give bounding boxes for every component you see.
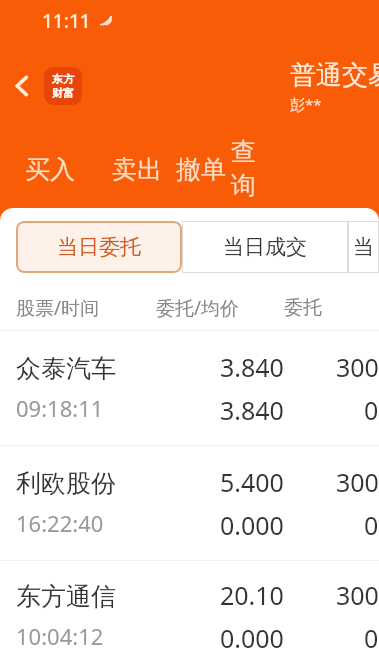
staticText: 东方通信 <box>16 581 116 612</box>
staticText: 查询 <box>228 136 259 202</box>
staticText: 当日委托 <box>57 234 141 260</box>
button[interactable]: 利欧股份 <box>0 446 379 560</box>
button[interactable]: 卖出 <box>100 130 174 208</box>
button[interactable]: 当日成交 <box>182 221 348 273</box>
staticText: 0 <box>364 393 379 427</box>
staticText: 买入 <box>25 154 75 185</box>
staticText: 09:18:11 <box>16 393 104 423</box>
staticText: 当日 <box>348 234 379 260</box>
staticText: 3.840 <box>220 393 284 427</box>
staticText: 众泰汽车 <box>16 353 116 384</box>
button[interactable]: 众泰汽车 <box>0 331 379 445</box>
staticText: 0 <box>364 621 379 655</box>
staticText: 5.400 <box>220 465 284 499</box>
staticText: 彭** <box>290 94 322 114</box>
button[interactable]: 撤单 <box>174 130 228 208</box>
staticText: 撤单 <box>176 154 226 185</box>
staticText: 当日成交 <box>223 234 307 260</box>
button[interactable]: 当日委托 <box>16 221 182 273</box>
staticText: 20.10 <box>220 578 284 612</box>
staticText: 11:11 <box>42 8 91 34</box>
button[interactable]: 买入 <box>0 130 100 208</box>
staticText: 0.000 <box>220 621 284 655</box>
button[interactable]: 东方通信 <box>0 561 379 671</box>
staticText: 东方 <box>52 72 74 86</box>
staticText: 300 <box>336 350 379 384</box>
staticText: 10:04:12 <box>16 621 104 651</box>
staticText: 300 <box>336 578 379 612</box>
button[interactable]: 当日 <box>348 221 379 273</box>
staticText: 0 <box>364 508 379 542</box>
staticText: 股票/时间 <box>16 295 156 321</box>
staticText: 卖出 <box>112 154 162 185</box>
staticText: 委托 <box>284 296 322 320</box>
button[interactable]: Back <box>0 64 44 108</box>
staticText: 3.840 <box>220 350 284 384</box>
staticText: 300 <box>336 465 379 499</box>
staticText: 普通交易 <box>290 59 379 92</box>
button[interactable]: East Money logo <box>44 67 82 105</box>
staticText: 委托/均价 <box>156 295 284 321</box>
staticText: 利欧股份 <box>16 468 116 499</box>
staticText: 16:22:40 <box>16 508 104 538</box>
staticText: 0.000 <box>220 508 284 542</box>
button[interactable]: 查询 <box>228 130 259 208</box>
staticText: 财富 <box>52 86 74 100</box>
